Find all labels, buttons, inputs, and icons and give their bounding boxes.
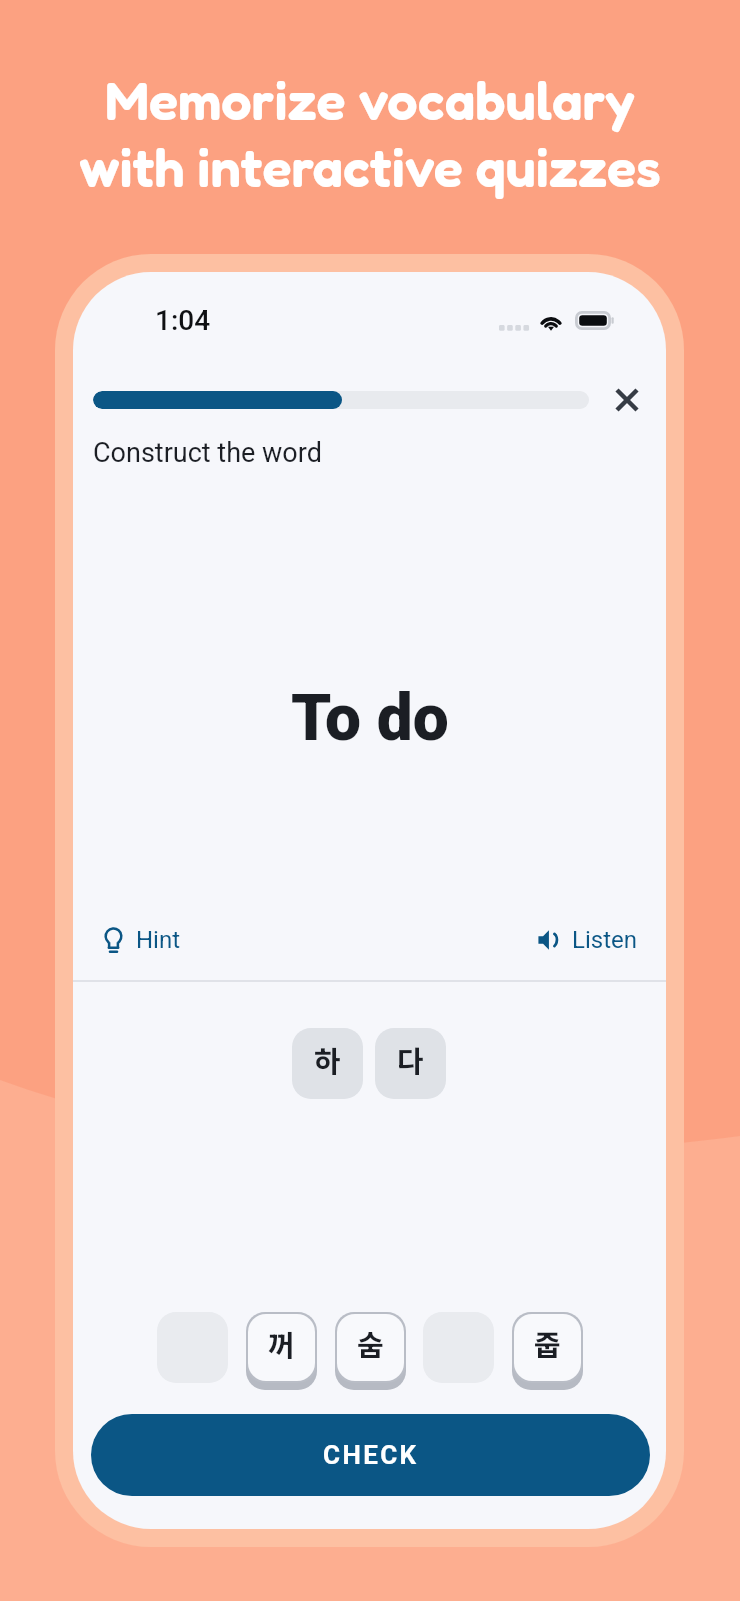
- staticText: Listen: [572, 926, 637, 954]
- staticText: CHECK: [323, 1440, 419, 1470]
- staticText: Memorize vocabulary with interactive qui…: [79, 67, 661, 200]
- button[interactable]: Close: [603, 377, 648, 422]
- staticText: Hint: [136, 926, 181, 954]
- staticText: 줍: [534, 1322, 561, 1364]
- button[interactable]: Listen: [530, 917, 645, 963]
- button[interactable]: 다: [375, 1028, 446, 1099]
- button[interactable]: 줍: [514, 1314, 581, 1381]
- button[interactable]: 숨: [337, 1314, 404, 1381]
- staticText: To do: [291, 681, 449, 756]
- staticText: 다: [397, 1038, 424, 1080]
- staticText: 1:04: [155, 304, 211, 337]
- button[interactable]: Hint: [97, 917, 189, 963]
- button[interactable]: 꺼: [248, 1314, 315, 1381]
- staticText: 하: [314, 1038, 341, 1080]
- staticText: 꺼: [268, 1322, 295, 1364]
- staticText: 숨: [357, 1322, 384, 1364]
- button[interactable]: 하: [292, 1028, 363, 1099]
- button[interactable]: CHECK: [91, 1414, 650, 1496]
- staticText: Construct the word: [93, 437, 322, 469]
